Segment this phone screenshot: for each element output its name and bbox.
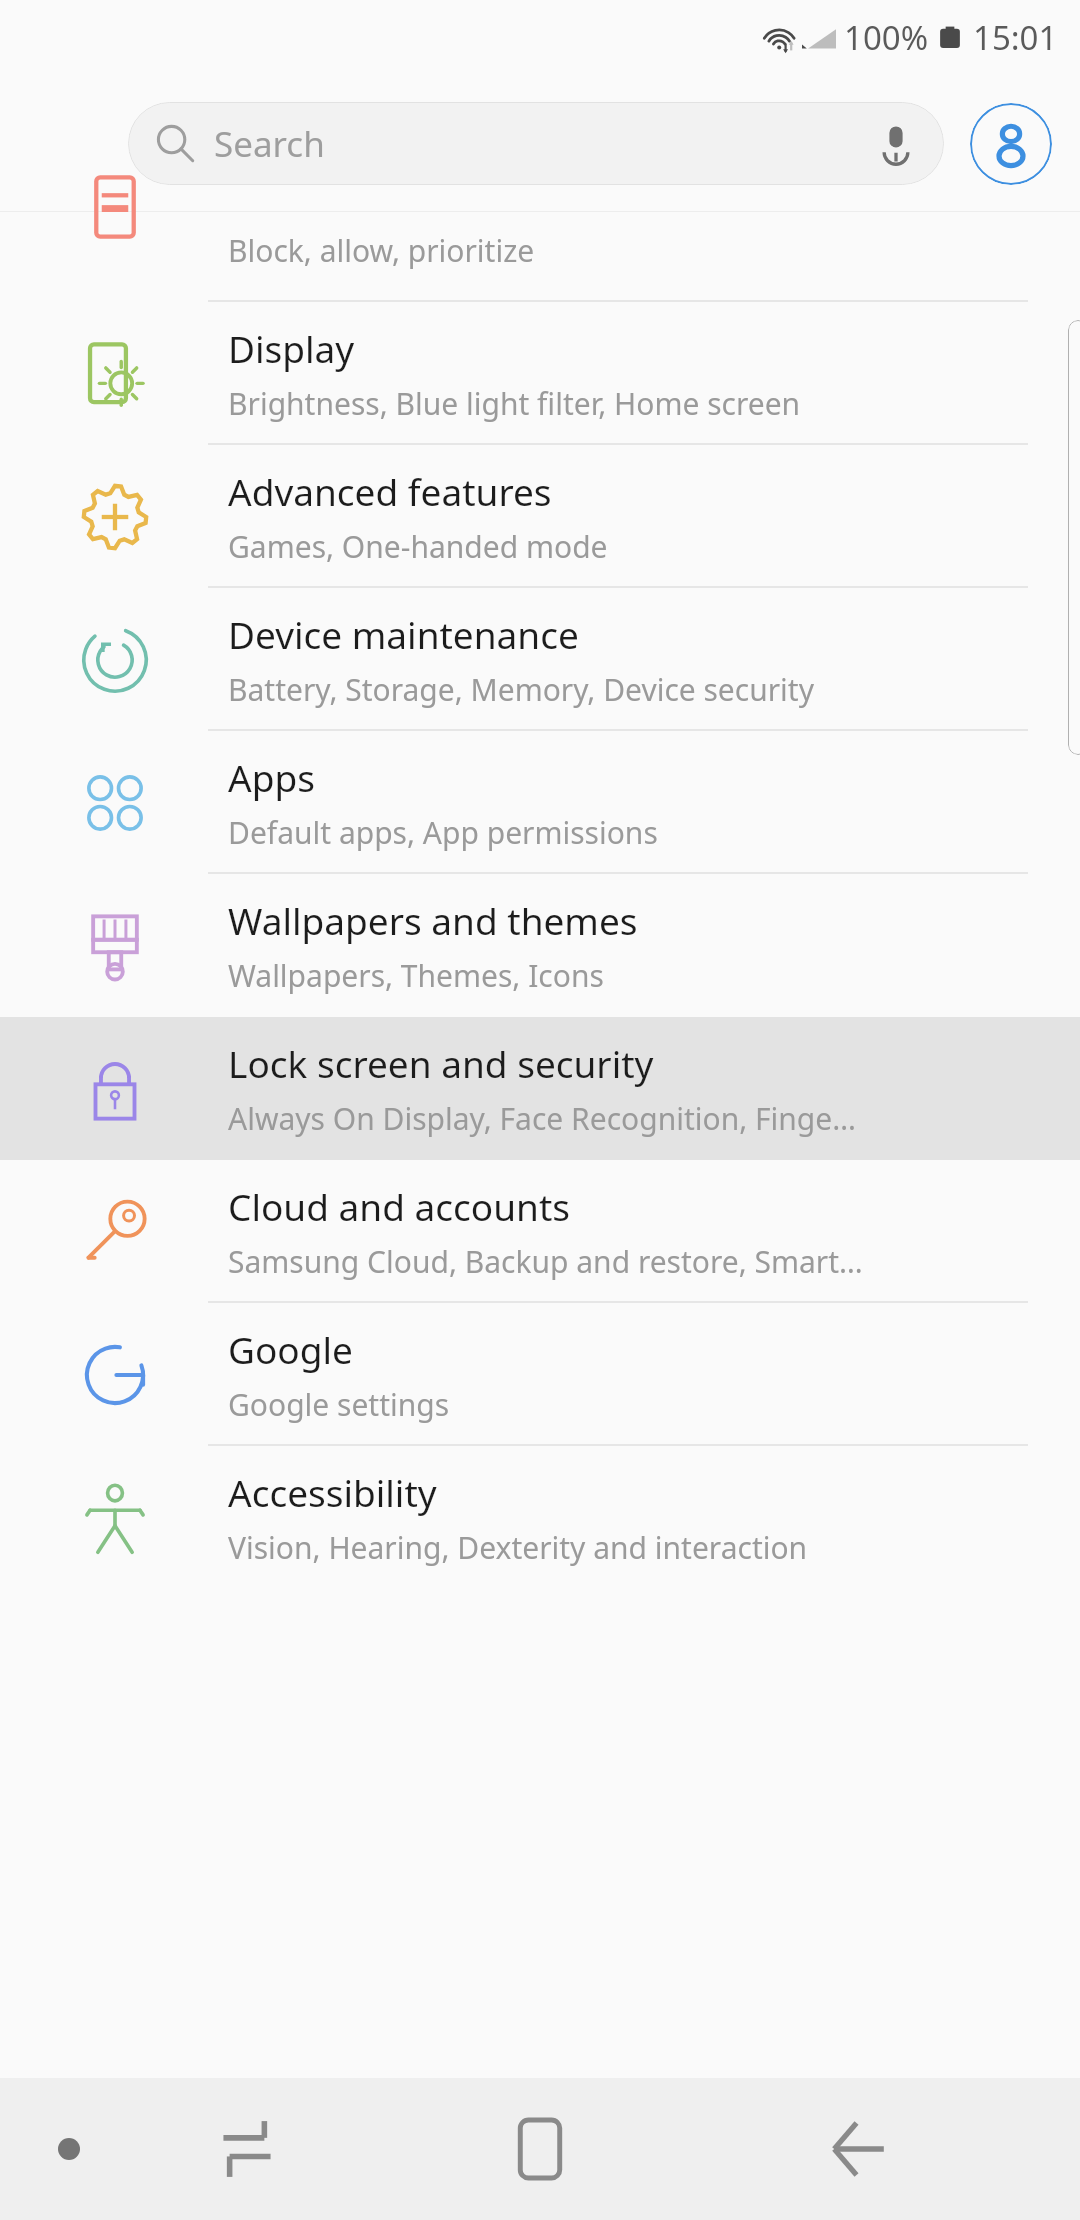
staticText: Lock screen and security: [228, 1038, 654, 1088]
staticText: Default apps, App permissions: [228, 812, 658, 853]
staticText: Block, allow, prioritize: [228, 230, 535, 271]
staticText: Advanced features: [228, 466, 552, 516]
button[interactable]: Accessibility: [0, 1446, 1080, 1589]
button[interactable]: Apps: [0, 731, 1080, 874]
button[interactable]: Wallpapers and themes: [0, 874, 1080, 1017]
button[interactable]: Recents: [192, 2094, 302, 2204]
staticText: Display: [228, 323, 355, 373]
staticText: Google: [228, 1324, 353, 1374]
button[interactable]: Lock screen and security: [0, 1017, 1080, 1160]
staticText: Search: [214, 120, 325, 168]
button[interactable]: Device maintenance: [0, 588, 1080, 731]
staticText: Device maintenance: [228, 609, 579, 659]
staticText: Brightness, Blue light filter, Home scre…: [228, 383, 801, 424]
staticText: Always On Display, Face Recognition, Fin…: [228, 1098, 856, 1139]
staticText: Samsung Cloud, Backup and restore, Smart…: [228, 1241, 863, 1282]
staticText: Google settings: [228, 1384, 450, 1425]
staticText: Wallpapers and themes: [228, 895, 638, 945]
button[interactable]: Display: [0, 302, 1080, 445]
staticText: Battery, Storage, Memory, Device securit…: [228, 669, 814, 710]
staticText: 100%: [844, 15, 929, 60]
staticText: Cloud and accounts: [228, 1181, 571, 1231]
button[interactable]: Google: [0, 1303, 1080, 1446]
button[interactable]: Account: [970, 103, 1052, 185]
staticText: Vision, Hearing, Dexterity and interacti…: [228, 1527, 808, 1568]
staticText: Accessibility: [228, 1467, 437, 1517]
staticText: Games, One-handed mode: [228, 526, 608, 567]
staticText: Apps: [228, 752, 315, 802]
button[interactable]: Back: [804, 2094, 914, 2204]
staticText: 15:01: [973, 15, 1058, 60]
button[interactable]: Search: [128, 102, 944, 185]
button[interactable]: Cloud and accounts: [0, 1160, 1080, 1303]
button[interactable]: Home: [485, 2094, 595, 2204]
button[interactable]: Advanced features: [0, 445, 1080, 588]
staticText: Wallpapers, Themes, Icons: [228, 955, 604, 996]
